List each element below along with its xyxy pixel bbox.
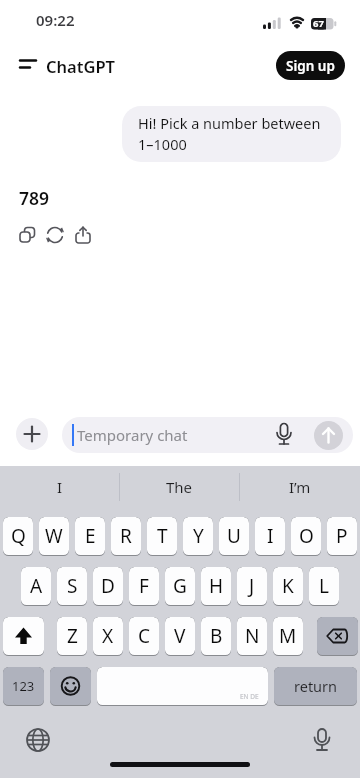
staticText: O: [299, 523, 314, 549]
button[interactable]: [16, 224, 38, 246]
staticText: S: [67, 573, 78, 599]
staticText: H: [209, 573, 224, 599]
staticText: P: [336, 523, 348, 549]
staticText: L: [319, 573, 329, 599]
staticText: B: [210, 623, 223, 649]
staticText: Temporary chat: [77, 425, 188, 445]
button[interactable]: E: [75, 517, 105, 555]
staticText: ChatGPT: [46, 55, 115, 77]
staticText: T: [157, 523, 168, 549]
button[interactable]: 123: [3, 667, 44, 705]
button[interactable]: J: [237, 567, 267, 605]
button[interactable]: U: [219, 517, 249, 555]
button[interactable]: V: [165, 617, 195, 655]
staticText: V: [174, 623, 186, 649]
staticText: Y: [193, 523, 204, 549]
button[interactable]: B: [201, 617, 231, 655]
staticText: The: [166, 477, 193, 497]
button[interactable]: N: [237, 617, 267, 655]
button[interactable]: Sign up: [276, 51, 345, 80]
button[interactable]: Z: [57, 617, 87, 655]
staticText: F: [139, 573, 149, 599]
staticText: I: [267, 523, 274, 549]
button[interactable]: T: [147, 517, 177, 555]
staticText: K: [282, 573, 294, 599]
button[interactable]: [12, 52, 44, 80]
button[interactable]: Q: [3, 517, 33, 555]
button[interactable]: M: [273, 617, 303, 655]
button[interactable]: G: [165, 567, 195, 605]
button[interactable]: [306, 724, 338, 756]
button[interactable]: H: [201, 567, 231, 605]
staticText: 67: [313, 17, 324, 30]
staticText: Z: [67, 623, 78, 649]
button[interactable]: O: [291, 517, 321, 555]
button[interactable]: I: [0, 468, 119, 506]
button[interactable]: [16, 418, 48, 450]
staticText: U: [227, 523, 241, 549]
staticText: G: [173, 573, 187, 599]
staticText: EN DE: [240, 692, 259, 701]
button[interactable]: The: [120, 468, 239, 506]
staticText: 123: [12, 677, 35, 695]
button[interactable]: W: [39, 517, 69, 555]
button[interactable]: A: [21, 567, 51, 605]
staticText: A: [30, 573, 43, 599]
staticText: X: [102, 623, 114, 649]
button[interactable]: D: [93, 567, 123, 605]
button[interactable]: R: [111, 517, 141, 555]
staticText: R: [120, 523, 132, 549]
button[interactable]: S: [57, 567, 87, 605]
staticText: E: [85, 523, 96, 549]
button[interactable]: [314, 421, 343, 450]
button[interactable]: [44, 224, 66, 246]
staticText: C: [138, 623, 151, 649]
button[interactable]: K: [273, 567, 303, 605]
button[interactable]: [50, 667, 91, 705]
button[interactable]: I’m: [240, 468, 360, 506]
button[interactable]: return: [274, 667, 357, 705]
button[interactable]: Temporary chat: [62, 417, 353, 453]
button[interactable]: [317, 617, 358, 655]
staticText: 789: [19, 186, 50, 210]
staticText: I’m: [289, 477, 311, 497]
staticText: Sign up: [286, 57, 335, 75]
button[interactable]: C: [129, 617, 159, 655]
staticText: J: [249, 573, 255, 599]
button[interactable]: I: [255, 517, 285, 555]
button[interactable]: P: [327, 517, 357, 555]
button[interactable]: F: [129, 567, 159, 605]
button[interactable]: EN DE: [97, 667, 268, 705]
button[interactable]: [72, 224, 94, 246]
button[interactable]: L: [309, 567, 339, 605]
button[interactable]: [22, 724, 54, 756]
staticText: Q: [11, 523, 26, 549]
staticText: Hi! Pick a number between 1–1000: [138, 113, 321, 154]
staticText: 09:22: [36, 10, 75, 30]
staticText: D: [101, 573, 115, 599]
staticText: I: [57, 477, 63, 497]
button[interactable]: [3, 617, 44, 655]
button[interactable]: X: [93, 617, 123, 655]
staticText: M: [279, 623, 297, 649]
staticText: return: [294, 676, 338, 696]
staticText: N: [245, 623, 260, 649]
button[interactable]: Y: [183, 517, 213, 555]
staticText: W: [45, 523, 63, 549]
